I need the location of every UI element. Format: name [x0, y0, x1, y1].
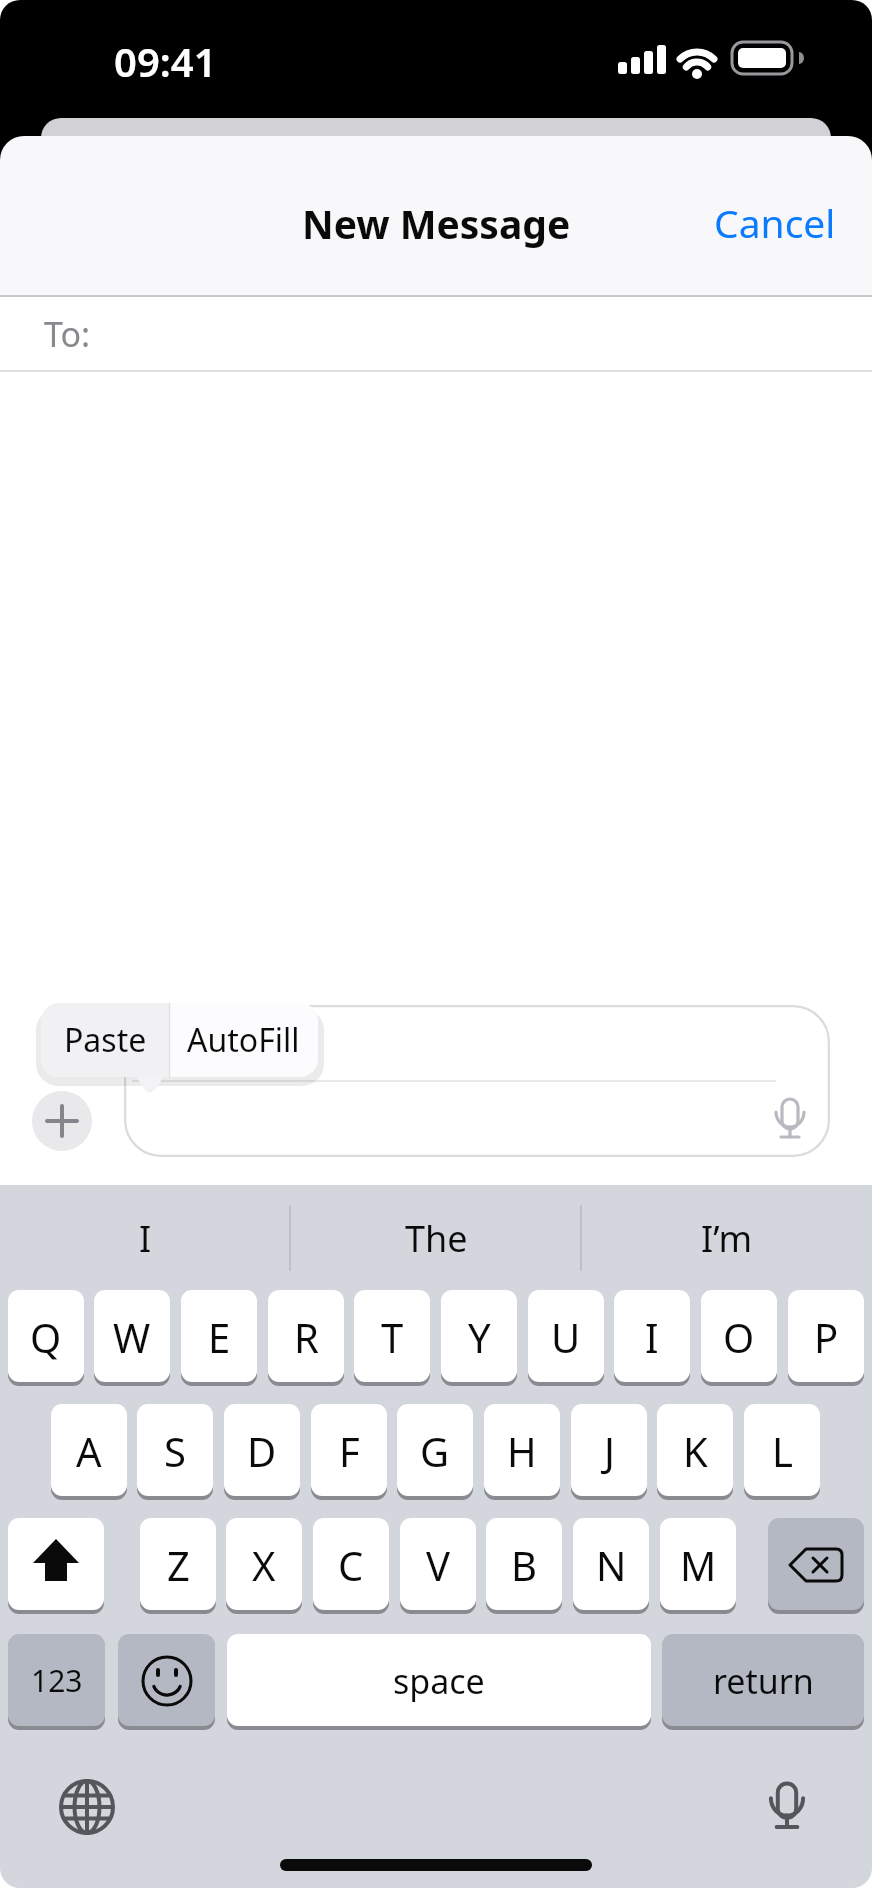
- staticText: U: [551, 1310, 581, 1364]
- button[interactable]: Q: [8, 1290, 84, 1383]
- staticText: P: [814, 1310, 839, 1364]
- staticText: Paste: [64, 1018, 147, 1062]
- button[interactable]: O: [701, 1290, 777, 1383]
- staticText: F: [339, 1424, 360, 1478]
- button[interactable]: T: [354, 1290, 430, 1383]
- button[interactable]: 123: [8, 1634, 105, 1727]
- staticText: R: [294, 1310, 319, 1364]
- staticText: Y: [468, 1310, 491, 1364]
- staticText: N: [596, 1538, 627, 1592]
- button[interactable]: AutoFill: [169, 1003, 318, 1077]
- staticText: D: [247, 1424, 277, 1478]
- button[interactable]: [124, 1005, 830, 1157]
- staticText: 09:41: [114, 34, 217, 80]
- button[interactable]: M: [660, 1518, 736, 1611]
- button[interactable]: I’m: [582, 1203, 872, 1273]
- button[interactable]: U: [528, 1290, 604, 1383]
- button[interactable]: space: [227, 1634, 651, 1727]
- button[interactable]: D: [224, 1404, 300, 1497]
- button[interactable]: [8, 1518, 104, 1611]
- staticText: E: [208, 1310, 231, 1364]
- staticText: W: [113, 1310, 151, 1364]
- button[interactable]: R: [268, 1290, 344, 1383]
- button[interactable]: [118, 1634, 215, 1727]
- staticText: Q: [30, 1310, 62, 1364]
- staticText: I: [139, 1214, 152, 1263]
- staticText: M: [680, 1538, 717, 1592]
- button[interactable]: [757, 1775, 817, 1835]
- button[interactable]: [32, 1091, 92, 1151]
- staticText: V: [426, 1538, 450, 1592]
- button[interactable]: G: [397, 1404, 473, 1497]
- button[interactable]: X: [226, 1518, 302, 1611]
- staticText: A: [76, 1424, 102, 1478]
- button[interactable]: C: [313, 1518, 389, 1611]
- staticText: Z: [167, 1538, 190, 1592]
- staticText: 123: [31, 1660, 83, 1701]
- button[interactable]: L: [744, 1404, 820, 1497]
- staticText: T: [381, 1310, 404, 1364]
- staticText: J: [604, 1424, 615, 1478]
- staticText: New Message: [302, 197, 571, 250]
- button[interactable]: I: [614, 1290, 690, 1383]
- staticText: O: [723, 1310, 755, 1364]
- staticText: To:: [44, 311, 91, 357]
- button[interactable]: Y: [441, 1290, 517, 1383]
- button[interactable]: Cancel: [700, 192, 850, 252]
- staticText: return: [713, 1658, 814, 1704]
- button[interactable]: return: [662, 1634, 864, 1727]
- staticText: X: [252, 1538, 276, 1592]
- button[interactable]: B: [486, 1518, 562, 1611]
- staticText: K: [683, 1424, 708, 1478]
- button[interactable]: Z: [140, 1518, 216, 1611]
- staticText: G: [420, 1424, 450, 1478]
- button[interactable]: A: [51, 1404, 127, 1497]
- button[interactable]: I: [0, 1203, 290, 1273]
- button[interactable]: [768, 1518, 864, 1611]
- staticText: Cancel: [714, 196, 836, 249]
- button[interactable]: The: [291, 1203, 581, 1273]
- staticText: L: [772, 1424, 793, 1478]
- button[interactable]: S: [137, 1404, 213, 1497]
- staticText: S: [164, 1424, 186, 1478]
- staticText: AutoFill: [187, 1018, 300, 1062]
- button[interactable]: Paste: [41, 1003, 169, 1077]
- button[interactable]: W: [94, 1290, 170, 1383]
- staticText: C: [338, 1538, 364, 1592]
- button[interactable]: J: [571, 1404, 647, 1497]
- button[interactable]: N: [573, 1518, 649, 1611]
- button[interactable]: P: [788, 1290, 864, 1383]
- staticText: I: [645, 1310, 659, 1364]
- staticText: space: [393, 1658, 485, 1704]
- button[interactable]: To:: [0, 297, 872, 370]
- button[interactable]: K: [657, 1404, 733, 1497]
- button[interactable]: F: [311, 1404, 387, 1497]
- button[interactable]: V: [400, 1518, 476, 1611]
- button[interactable]: H: [484, 1404, 560, 1497]
- staticText: B: [511, 1538, 537, 1592]
- staticText: H: [507, 1424, 537, 1478]
- staticText: The: [405, 1214, 468, 1263]
- button[interactable]: [57, 1777, 117, 1837]
- button[interactable]: E: [181, 1290, 257, 1383]
- staticText: I’m: [701, 1214, 753, 1263]
